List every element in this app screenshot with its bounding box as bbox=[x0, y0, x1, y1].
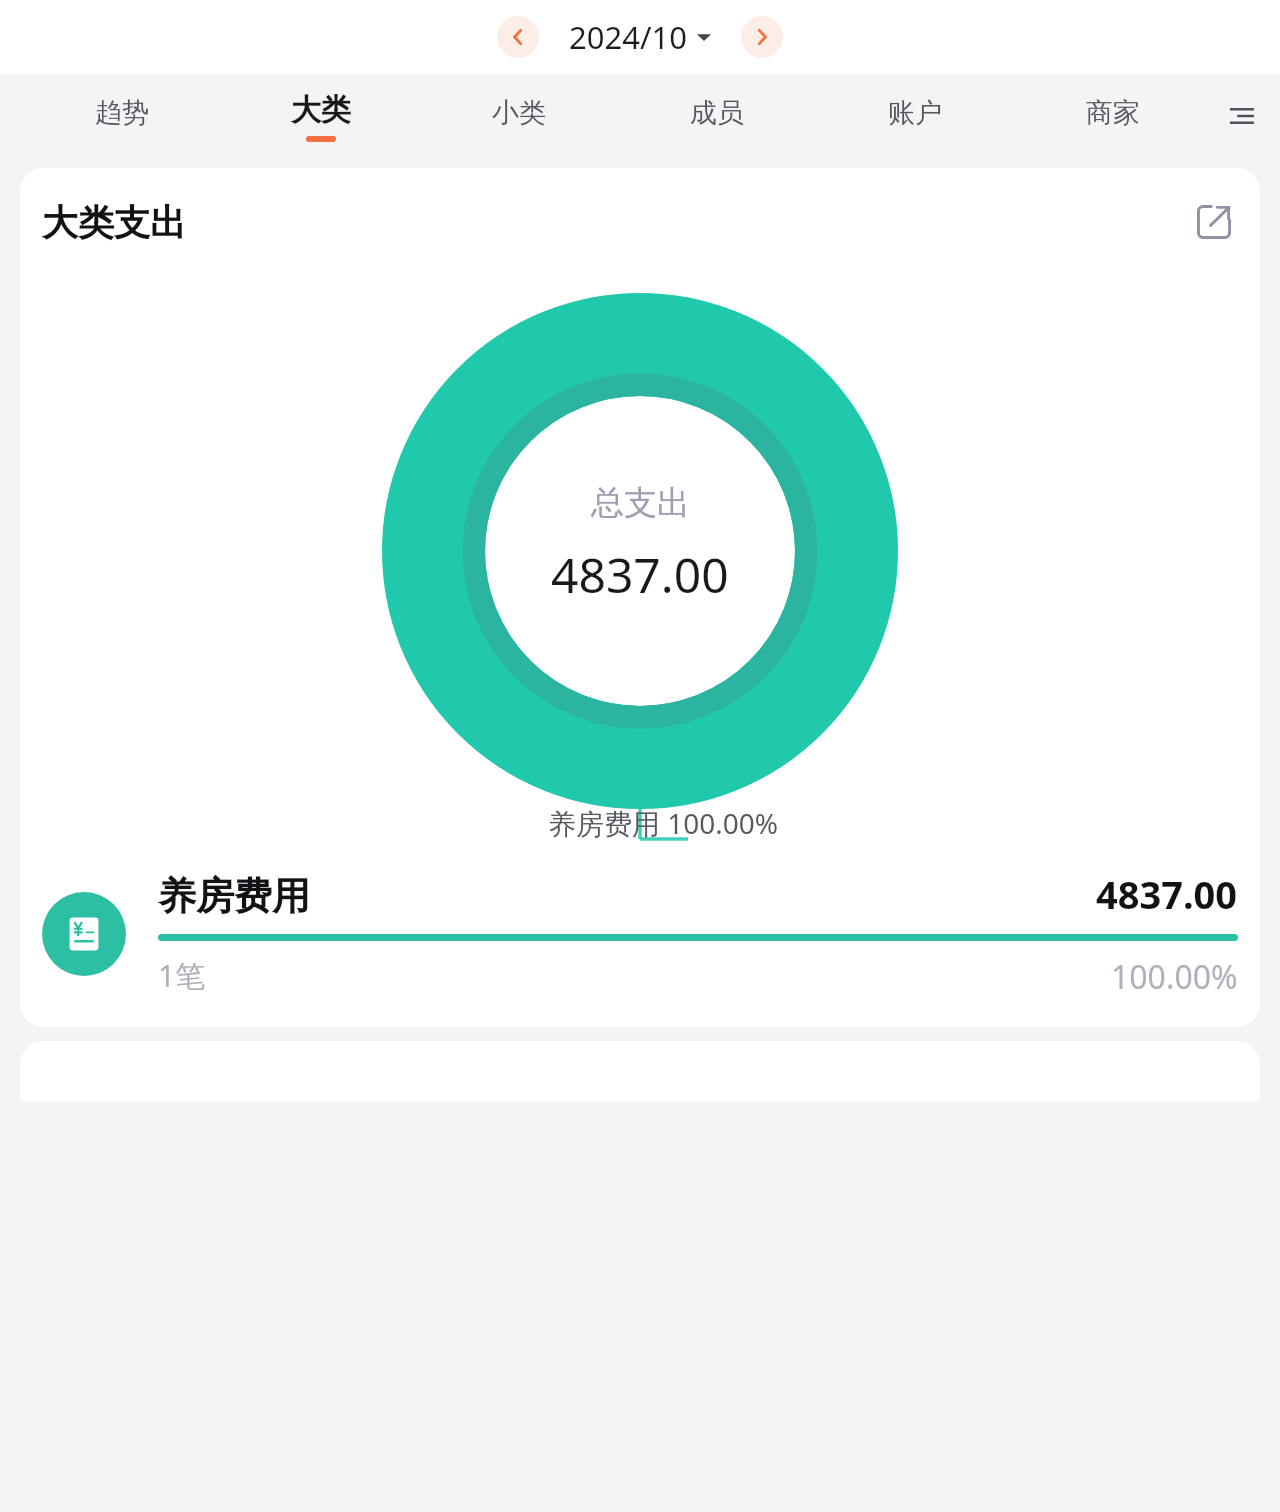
button[interactable]: 养房费用 bbox=[42, 868, 1238, 999]
staticText: 趋势 bbox=[95, 96, 149, 130]
button[interactable]: Share bbox=[1190, 198, 1238, 246]
staticText: 1笔 bbox=[158, 955, 206, 996]
staticText: 成员 bbox=[690, 96, 744, 130]
staticText: 4837.00 bbox=[551, 542, 729, 607]
staticText: 100.00% bbox=[1111, 955, 1238, 999]
staticText: 大类支出 bbox=[42, 200, 186, 245]
button[interactable]: 2024/10 bbox=[569, 16, 711, 58]
staticText: 养房费用 100.00% bbox=[548, 804, 779, 842]
button[interactable]: 账户 bbox=[816, 74, 1014, 158]
staticText: 账户 bbox=[888, 96, 942, 130]
button[interactable]: Previous month bbox=[497, 16, 539, 58]
staticText: 大类 bbox=[291, 91, 351, 129]
staticText: 总支出 bbox=[591, 482, 690, 524]
staticText: 商家 bbox=[1086, 96, 1140, 130]
staticText: 2024/10 bbox=[569, 16, 687, 58]
staticText: 养房费用 bbox=[158, 872, 310, 920]
button[interactable]: 商家 bbox=[1014, 74, 1212, 158]
button[interactable]: 小类 bbox=[420, 74, 618, 158]
staticText: 小类 bbox=[492, 96, 546, 130]
button[interactable]: 大类 bbox=[221, 74, 420, 158]
button[interactable]: More tabs bbox=[1212, 74, 1272, 158]
staticText: 4837.00 bbox=[1096, 868, 1238, 920]
button[interactable]: Next month bbox=[741, 16, 783, 58]
button[interactable]: 成员 bbox=[618, 74, 816, 158]
button[interactable]: 趋势 bbox=[22, 74, 221, 158]
